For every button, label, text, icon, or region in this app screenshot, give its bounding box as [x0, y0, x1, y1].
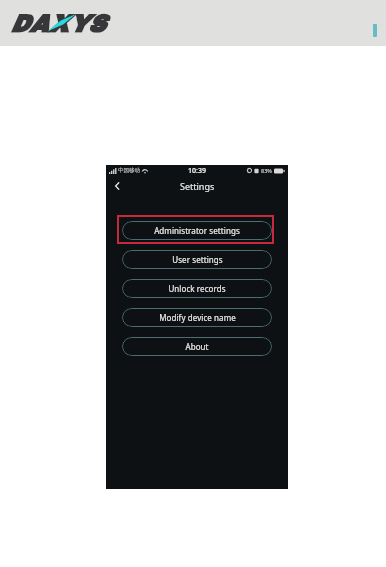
button[interactable]: Back	[108, 177, 126, 195]
button[interactable]: Administrator settings	[122, 221, 272, 240]
button[interactable]: User settings	[122, 250, 272, 269]
staticText: 83%	[261, 167, 272, 174]
button[interactable]: Unlock records	[122, 279, 272, 298]
button[interactable]: About	[122, 337, 272, 356]
button[interactable]: Menu	[373, 24, 377, 37]
staticText: Modify device name	[159, 312, 236, 323]
staticText: About	[185, 341, 209, 352]
staticText: Administrator settings	[154, 225, 240, 236]
button[interactable]: Modify device name	[122, 308, 272, 327]
staticText: DAXYS	[10, 11, 107, 37]
staticText: 10:39	[188, 166, 206, 176]
staticText: Unlock records	[168, 283, 226, 294]
staticText: Settings	[180, 180, 215, 192]
staticText: User settings	[172, 254, 223, 265]
staticText: 中国移动	[118, 167, 140, 174]
